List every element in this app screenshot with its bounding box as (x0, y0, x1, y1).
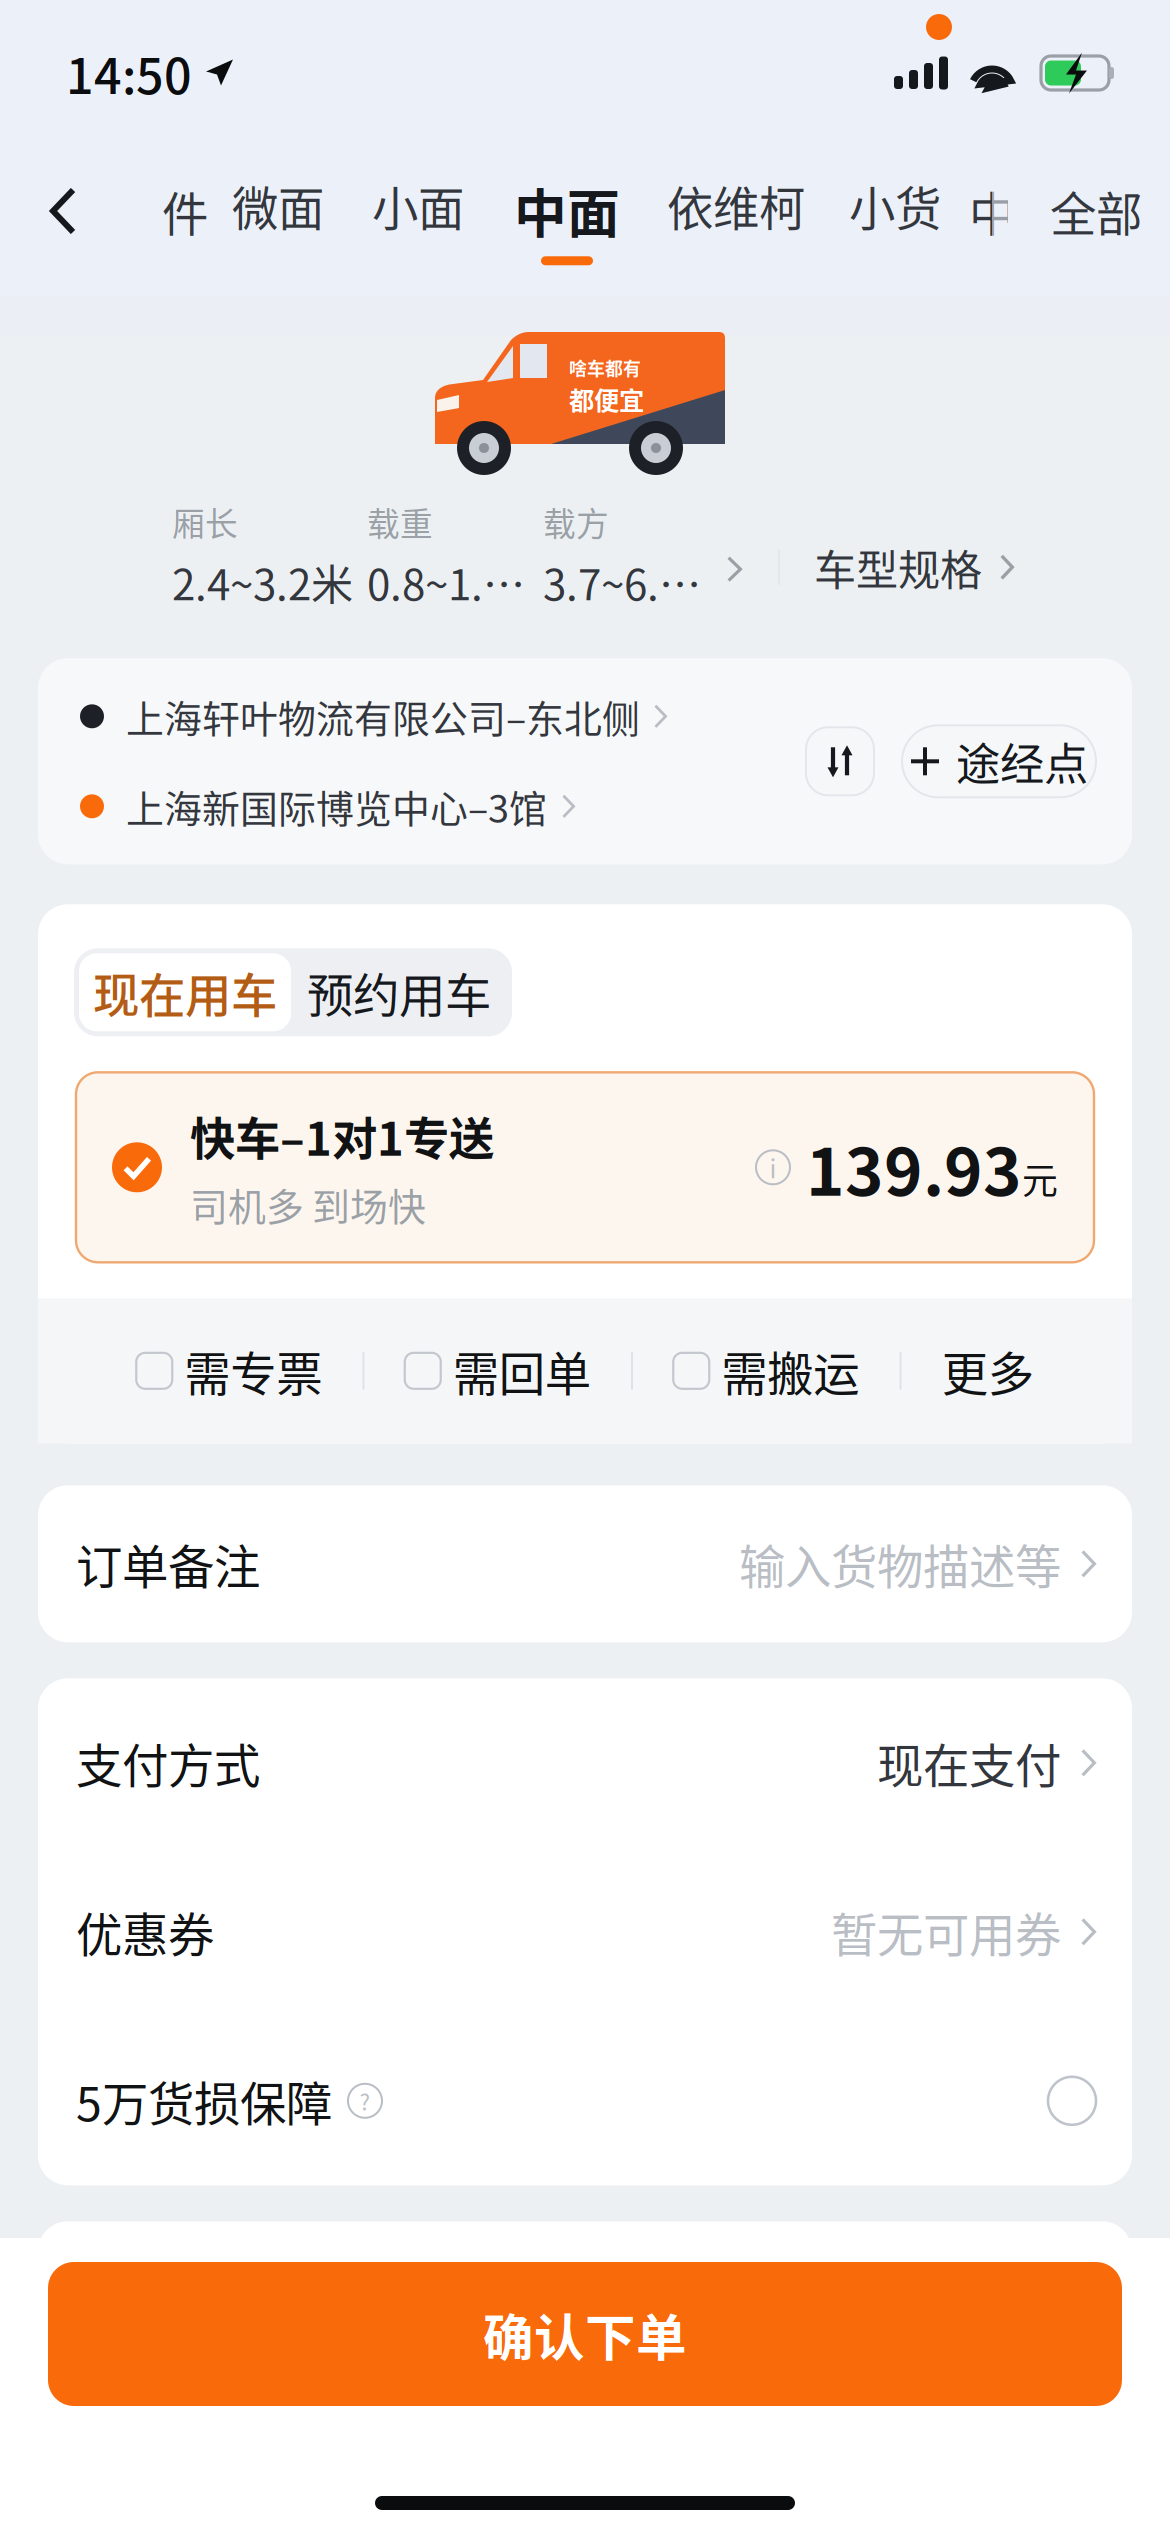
button[interactable]: 小面 (348, 146, 488, 276)
button[interactable]: 全部 (1022, 146, 1170, 276)
staticText: 更多 (942, 1337, 1034, 1404)
staticText: 元 (1022, 1152, 1058, 1204)
staticText: 支付方式 (76, 1729, 260, 1796)
staticText: 上海轩叶物流有限公司–东北侧 (126, 689, 640, 744)
staticText: 全部 (1050, 177, 1142, 245)
staticText: 3.7~6.1方 (543, 551, 719, 612)
staticText: 暂无可用券 (831, 1898, 1061, 1965)
button[interactable]: 订单备注 (38, 1485, 1132, 1642)
staticText: 途经点 (956, 729, 1088, 793)
staticText: 都便宜 (569, 381, 644, 417)
button[interactable]: 更多 (942, 1337, 1034, 1404)
staticText: 小面 (372, 172, 464, 239)
button[interactable]: 厢长 (172, 498, 742, 612)
staticText: 2.4~3.2米 (172, 551, 353, 612)
staticText: 需专票 (184, 1337, 322, 1404)
button[interactable]: 支付方式 (38, 1678, 1132, 1847)
button[interactable]: 途经点 (902, 725, 1096, 797)
button[interactable]: 中面 (488, 146, 646, 276)
button[interactable]: 需回单 (405, 1337, 591, 1404)
staticText: 确认下单 (483, 2297, 687, 2371)
staticText: 139.93 (806, 1120, 1022, 1215)
button[interactable]: 返回 (0, 146, 126, 276)
button[interactable]: 现在用车 (79, 953, 291, 1031)
button[interactable]: 5万货损保障 (38, 2016, 1132, 2185)
staticText: ? (359, 2085, 370, 2117)
button[interactable]: 交换起终点 (806, 727, 874, 795)
staticText: 14:50 (66, 38, 192, 108)
button[interactable]: 需专票 (136, 1337, 322, 1404)
staticText: 载重 (367, 498, 433, 545)
staticText: 现在支付 (877, 1729, 1061, 1796)
staticText: 5万货损保障 (76, 2067, 332, 2134)
button[interactable]: 优惠券 (38, 1847, 1132, 2016)
button[interactable]: 小货 (826, 146, 964, 276)
staticText: 上海新国际博览中心–3馆 (126, 779, 547, 834)
staticText: 车型规格 (814, 537, 982, 598)
button[interactable]: 上海新国际博览中心–3馆 (80, 762, 748, 850)
staticText: 订单备注 (76, 1530, 260, 1597)
button[interactable]: 依维柯 (646, 146, 826, 276)
staticText: 优惠券 (76, 1898, 214, 1965)
staticText: 现在用车 (93, 959, 277, 1026)
staticText: 厢长 (172, 498, 238, 545)
staticText: 载方 (543, 498, 609, 545)
staticText: 输入货物描述等 (739, 1530, 1061, 1597)
staticText: 依维柯 (667, 172, 805, 239)
staticText: 中面 (514, 172, 620, 248)
button[interactable]: 微面 (208, 146, 348, 276)
staticText: 预约用车 (307, 959, 491, 1026)
button[interactable]: 需搬运 (673, 1337, 859, 1404)
staticText: 需回单 (453, 1337, 591, 1404)
staticText: 啥车都有 (569, 355, 641, 381)
staticText: 司机多 到场快 (190, 1177, 426, 1231)
staticText: i (769, 1149, 776, 1185)
button[interactable]: 确认下单 (48, 2262, 1122, 2406)
staticText: 中 (969, 177, 1015, 245)
staticText: 件 (162, 177, 208, 245)
staticText: 微面 (232, 172, 324, 239)
staticText: 小货 (849, 172, 941, 239)
staticText: 快车–1对1专送 (190, 1103, 494, 1169)
staticText: 需搬运 (721, 1337, 859, 1404)
button[interactable]: 上海轩叶物流有限公司–东北侧 (80, 672, 748, 760)
button[interactable]: 车型规格 (814, 525, 1014, 586)
button[interactable]: 预约用车 (291, 953, 507, 1031)
button[interactable]: 快车–1对1专送 (76, 1072, 1094, 1262)
staticText: 0.8~1.2吨 (367, 551, 543, 612)
